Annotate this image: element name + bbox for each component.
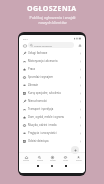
button[interactable]: Menu [22,43,27,48]
button[interactable]: Dodaj [46,153,59,164]
staticText: Motoryzacja i akcesoria [28,59,58,63]
staticText: Szukaj [37,159,43,162]
button[interactable]: Nieruchomości [19,97,85,105]
button[interactable]: Czego szukasz? [28,42,74,48]
staticText: Usługi fachowe [28,51,48,55]
button[interactable]: Wiad. [59,153,72,164]
button[interactable]: Dom, ogród, meble i ogrzew [19,113,85,121]
staticText: Nieruchomości [28,99,48,103]
staticText: Publikuj ogłoszenia i znajdź nowych klie… [29,15,76,25]
button[interactable]: Dodaj ogłoszenie [71,146,79,154]
button[interactable]: Motoryzacja i akcesoria [19,57,85,65]
button[interactable]: Transport i spedycja [19,105,85,113]
staticText: 9:41 [23,37,28,40]
button[interactable]: Kursy specjalne, szkolenia [19,89,85,97]
button[interactable]: Usługi fachowe [19,49,85,57]
staticText: Kursy specjalne, szkolenia [28,91,61,95]
staticText: Strona [23,159,30,162]
staticText: Odzież dziecięca [28,139,49,143]
button[interactable]: Profil [77,43,82,48]
staticText: Przyjęcia i uroczystości [28,131,57,135]
staticText: Muzyka, odzież i moda [28,123,57,127]
staticText: Dodaj [50,159,56,162]
button[interactable]: Sprzedaż i wynajem [19,73,85,81]
button[interactable]: Strona [19,153,33,164]
staticText: Czego szukasz? [34,44,52,47]
staticText: Wiad. [63,159,69,162]
staticText: Konto [76,159,82,162]
staticText: Sprzedaż i wynajem [28,75,53,79]
button[interactable]: Zdrowie [19,81,85,89]
staticText: Dom, ogród, meble i ogrzew [28,115,64,119]
button[interactable]: Odzież dziecięca [19,137,85,145]
button[interactable]: Szukaj [33,153,46,164]
button[interactable]: Konto [72,153,85,164]
staticText: Zdrowie [28,83,39,87]
staticText: OGŁOSZENIA [27,4,77,14]
button[interactable]: Muzyka, odzież i moda [19,121,85,129]
button[interactable]: Praca [19,65,85,73]
button[interactable]: Przyjęcia i uroczystości [19,129,85,137]
staticText: Transport i spedycja [28,107,54,111]
staticText: Praca [28,67,35,71]
